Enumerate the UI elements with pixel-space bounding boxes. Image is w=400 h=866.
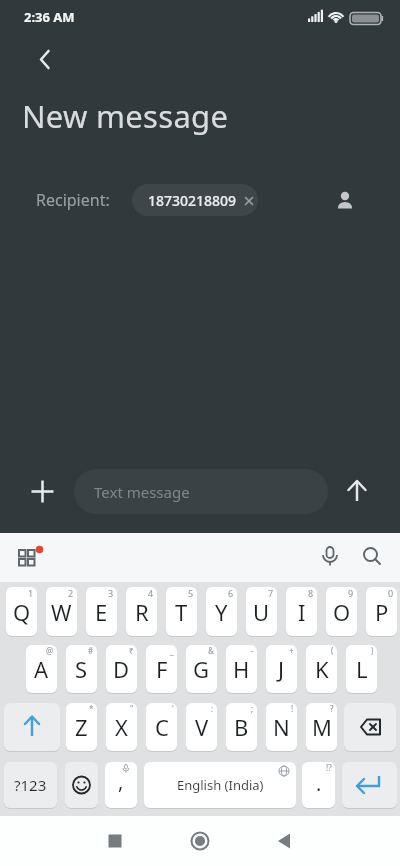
staticText: H [233,654,250,684]
staticText: U [253,597,270,627]
button[interactable]: Q [6,587,37,636]
staticText: J [278,654,285,684]
staticText: ) [371,645,374,656]
button[interactable]: U [246,587,277,636]
staticText: M [312,712,332,742]
staticText: 6 [228,587,234,599]
staticText: 5 [188,587,194,599]
staticText: ? [330,703,334,714]
button[interactable] [25,43,65,83]
staticText: - [251,645,254,656]
button[interactable]: H [226,645,257,693]
staticText: , [118,768,124,795]
staticText: B [234,712,249,742]
button[interactable] [342,476,372,506]
staticText: E [95,597,108,627]
button[interactable]: O [326,587,357,636]
button[interactable]: I [286,587,317,636]
button[interactable]: Text message [74,469,328,514]
button[interactable] [180,821,220,861]
button[interactable]: S [66,645,97,693]
staticText: ' [172,703,174,714]
staticText: L [356,654,368,684]
staticText: 7 [268,587,274,599]
staticText: 0 [388,587,394,599]
staticText: K [315,654,329,684]
button[interactable]: . [302,762,335,808]
staticText: S [75,654,88,684]
button[interactable]: C [146,703,177,751]
button[interactable]: R [126,587,157,636]
staticText: 8 [308,587,314,599]
button[interactable] [26,475,59,508]
staticText: New message [22,95,229,137]
staticText: !? [326,762,332,773]
button[interactable]: A [26,645,57,693]
staticText: C [155,712,169,742]
button[interactable]: G [186,645,217,693]
button[interactable]: D [106,645,137,693]
staticText: Z [75,712,88,742]
staticText: ; [251,703,254,714]
staticText: 18730218809 [148,191,237,210]
button[interactable]: X [106,703,137,751]
staticText: 2 [68,587,74,599]
button[interactable]: Y [206,587,237,636]
staticText: ! [291,703,294,714]
staticText: _ [170,645,174,656]
button[interactable]: L [346,645,377,693]
button[interactable]: 18730218809 [132,184,258,216]
button[interactable] [263,821,303,861]
staticText: V [195,712,209,742]
button[interactable]: M [306,703,337,751]
staticText: A [34,654,49,684]
button[interactable] [65,762,98,808]
staticText: W [51,597,72,627]
button[interactable] [344,703,396,751]
staticText: O [333,597,351,627]
staticText: + [289,645,294,656]
staticText: ?123 [14,775,47,795]
staticText: 2:36 AM [24,8,75,26]
staticText: G [193,654,210,684]
staticText: I [298,597,306,627]
button[interactable] [342,762,397,808]
staticText: Y [215,597,228,627]
staticText: @ [46,645,54,656]
button[interactable]: , [105,762,137,808]
button[interactable]: N [266,703,297,751]
button[interactable]: K [306,645,337,693]
button[interactable] [4,703,60,751]
button[interactable] [95,821,135,861]
button[interactable]: P [366,587,397,636]
button[interactable] [358,543,386,571]
staticText: # [88,645,94,656]
staticText: Text message [94,482,190,502]
staticText: D [113,654,130,684]
staticText: English (India) [177,776,264,794]
staticText: N [273,712,290,742]
button[interactable]: ?123 [4,762,57,808]
button[interactable]: W [46,587,77,636]
staticText: 4 [148,587,154,599]
button[interactable] [12,543,44,575]
staticText: F [156,654,168,684]
staticText: . [316,770,322,797]
button[interactable]: T [166,587,197,636]
staticText: R [135,597,149,627]
staticText: * [89,703,94,714]
button[interactable]: J [266,645,297,693]
staticText: " [130,703,134,714]
button[interactable]: F [146,645,177,693]
staticText: 1 [28,587,34,599]
button[interactable]: E [86,587,117,636]
button[interactable] [331,186,359,214]
staticText: Recipient: [36,189,110,211]
staticText: P [375,597,389,627]
button[interactable]: B [226,703,257,751]
staticText: 9 [348,587,354,599]
button[interactable]: English (India) [144,762,296,808]
button[interactable]: V [186,703,217,751]
button[interactable]: Z [66,703,97,751]
button[interactable] [316,543,344,571]
